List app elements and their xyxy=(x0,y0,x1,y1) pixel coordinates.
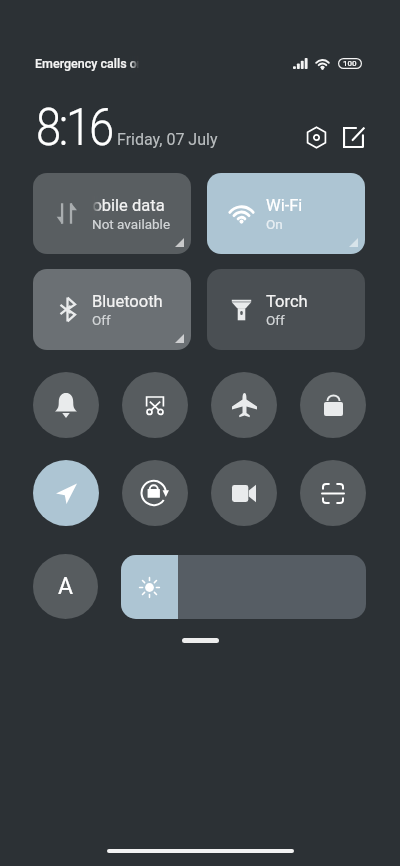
staticText: 100 xyxy=(343,59,357,68)
staticText: Friday, 07 July xyxy=(117,130,218,149)
button[interactable]: Mobile data xyxy=(33,173,191,254)
staticText: Torch xyxy=(266,292,308,311)
button[interactable]: Location xyxy=(33,460,99,526)
staticText: Off xyxy=(266,312,285,328)
staticText: 8:16 xyxy=(36,98,112,154)
staticText: On xyxy=(266,216,283,232)
staticText: Bluetooth xyxy=(92,292,163,311)
button[interactable]: Brightness xyxy=(121,555,366,619)
button[interactable]: A xyxy=(33,554,98,619)
staticText: Emergency calls only xyxy=(35,56,139,71)
staticText: Mobile data xyxy=(92,196,165,215)
button[interactable]: Settings xyxy=(301,122,331,152)
staticText: A xyxy=(58,573,74,600)
button[interactable]: Airplane mode xyxy=(211,372,277,438)
button[interactable]: Edit quick settings xyxy=(338,122,368,152)
button[interactable]: Screen lock xyxy=(300,372,366,438)
staticText: Not available xyxy=(92,216,171,232)
button[interactable]: Screen recorder xyxy=(211,460,277,526)
button[interactable]: Wi-Fi xyxy=(207,173,365,254)
staticText: Wi-Fi xyxy=(266,196,303,215)
staticText: Off xyxy=(92,312,111,328)
button[interactable]: Scanner xyxy=(300,460,366,526)
button[interactable]: Torch xyxy=(207,269,365,350)
button[interactable]: Silent xyxy=(33,372,99,438)
button[interactable]: Screenshot xyxy=(122,372,188,438)
button[interactable]: Bluetooth xyxy=(33,269,191,350)
button[interactable]: Auto rotate xyxy=(122,460,188,526)
